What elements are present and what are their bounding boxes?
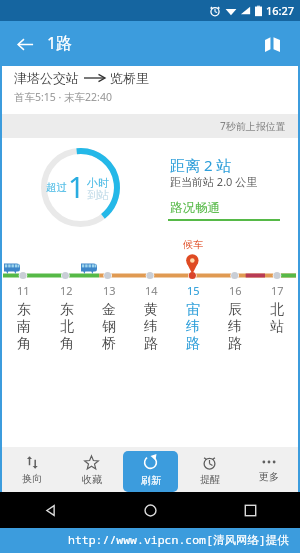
staticText: 路: [228, 335, 242, 352]
button[interactable]: 16: [214, 283, 256, 352]
staticText: 1路: [47, 32, 73, 54]
button[interactable]: 更多: [241, 451, 296, 492]
staticText: 15: [187, 283, 200, 298]
staticText: 站: [270, 318, 284, 335]
staticText: 13: [103, 283, 116, 298]
button[interactable]: 收藏: [64, 451, 119, 492]
staticText: 距离 2 站: [170, 155, 232, 175]
button[interactable]: 12: [45, 283, 88, 352]
button[interactable]: Recents: [233, 493, 267, 527]
staticText: 17: [271, 283, 284, 298]
staticText: 北: [270, 301, 284, 318]
button[interactable]: Map: [255, 27, 289, 61]
staticText: 桥: [102, 335, 116, 352]
staticText: 纬: [228, 318, 242, 335]
button[interactable]: 刷新: [123, 451, 178, 492]
staticText: 钢: [102, 318, 116, 335]
button[interactable]: 11: [2, 283, 45, 352]
staticText: 东: [17, 301, 31, 318]
staticText: 角: [60, 335, 74, 352]
button[interactable]: Back: [33, 493, 67, 527]
button[interactable]: 提醒: [182, 451, 237, 492]
staticText: 14: [145, 283, 158, 298]
staticText: 宙: [186, 301, 200, 318]
staticText: 距当前站 2.0 公里: [170, 174, 258, 189]
staticText: 纬: [144, 318, 158, 335]
button[interactable]: 15: [172, 283, 214, 352]
staticText: 津塔公交站: [14, 70, 79, 86]
staticText: 11: [17, 283, 30, 298]
staticText: 黄: [144, 301, 158, 318]
staticText: 北: [60, 318, 74, 335]
button[interactable]: Back: [9, 28, 41, 60]
staticText: 提醒: [200, 473, 220, 486]
staticText: 1: [68, 167, 85, 206]
staticText: 收藏: [82, 473, 102, 486]
staticText: 到站: [87, 188, 109, 200]
staticText: 路: [186, 335, 200, 352]
staticText: 12: [60, 283, 73, 298]
staticText: 路况畅通: [170, 200, 220, 216]
button[interactable]: 换向: [4, 451, 60, 492]
staticText: 首车5:15 · 末车22:40: [14, 90, 112, 104]
staticText: 7秒前上报位置: [220, 119, 286, 133]
staticText: 览桥里: [110, 70, 149, 86]
staticText: 刷新: [141, 474, 161, 487]
button[interactable]: 13: [88, 283, 130, 352]
staticText: 辰: [228, 301, 242, 318]
staticText: 16: [229, 283, 242, 298]
staticText: http://www.vipcn.com[清风网络]提供: [68, 532, 289, 548]
staticText: 换向: [22, 472, 42, 485]
staticText: 南: [17, 318, 31, 335]
staticText: 超过: [46, 181, 67, 194]
staticText: 小时: [87, 176, 109, 188]
staticText: 东: [60, 301, 74, 318]
staticText: 角: [17, 335, 31, 352]
staticText: 纬: [186, 318, 200, 335]
staticText: 更多: [259, 470, 279, 483]
staticText: 路: [144, 335, 158, 352]
staticText: 16:27: [266, 3, 295, 18]
button[interactable]: 17: [256, 283, 298, 335]
button[interactable]: Home: [133, 493, 167, 527]
staticText: 金: [102, 301, 116, 318]
button[interactable]: 14: [130, 283, 172, 352]
staticText: 候车: [183, 238, 203, 251]
